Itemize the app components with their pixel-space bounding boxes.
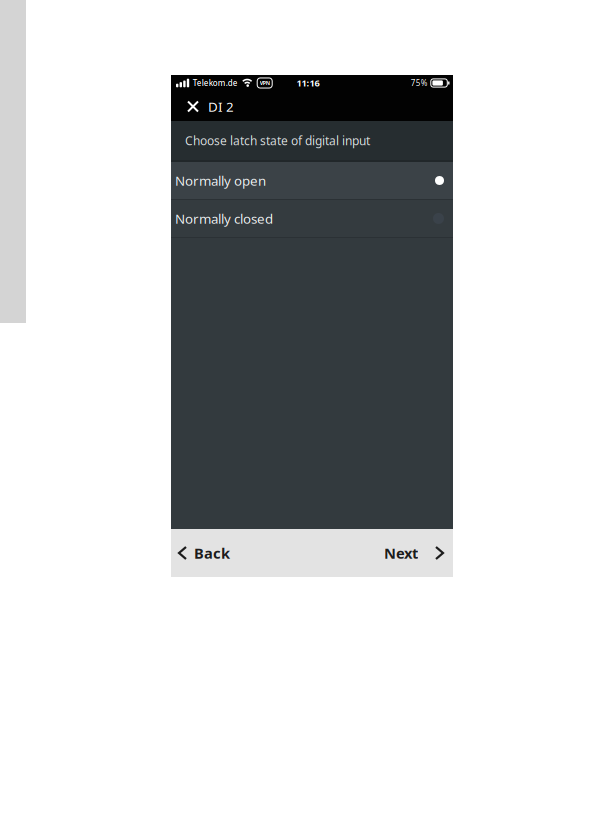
- staticText: VPN: [260, 79, 270, 87]
- button[interactable]: Close: [171, 96, 206, 119]
- staticText: 75%: [411, 78, 428, 88]
- staticText: Normally open: [175, 172, 266, 189]
- button[interactable]: Next: [384, 543, 453, 563]
- staticText: Choose latch state of digital input: [185, 132, 370, 148]
- staticText: Next: [384, 543, 418, 563]
- staticText: Telekom.de: [193, 78, 238, 88]
- button[interactable]: Back: [171, 543, 230, 563]
- staticText: 11:16: [296, 77, 319, 89]
- button[interactable]: Normally closed: [171, 200, 453, 237]
- staticText: Normally closed: [175, 210, 273, 227]
- staticText: Back: [194, 543, 230, 563]
- staticText: DI 2: [208, 98, 234, 115]
- button[interactable]: Normally open: [171, 162, 453, 199]
